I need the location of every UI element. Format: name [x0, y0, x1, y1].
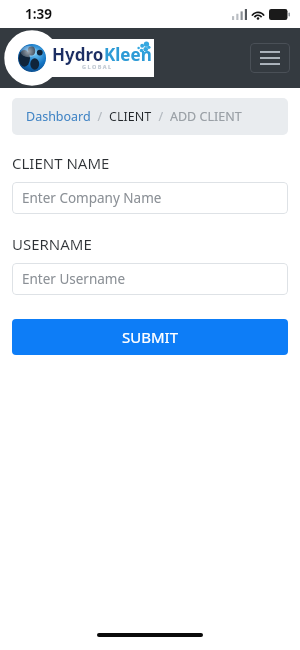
- staticText: ADD CLIENT: [170, 108, 242, 125]
- button[interactable]: Hydro: [12, 39, 154, 77]
- staticText: CLIENT NAME: [12, 153, 110, 173]
- button[interactable]: SUBMIT: [12, 319, 288, 355]
- staticText: Enter Username: [22, 270, 126, 288]
- staticText: Hydro: [52, 43, 104, 66]
- button[interactable]: Open navigation menu: [250, 43, 290, 73]
- staticText: G L O B A L: [82, 63, 112, 70]
- button[interactable]: Dashboard: [26, 108, 91, 125]
- staticText: 1:39: [25, 5, 52, 23]
- staticText: Enter Company Name: [22, 189, 162, 207]
- staticText: USERNAME: [12, 234, 92, 254]
- button[interactable]: Enter Company Name: [12, 182, 288, 214]
- staticText: /: [152, 108, 170, 125]
- staticText: SUBMIT: [122, 327, 178, 347]
- button[interactable]: CLIENT: [109, 108, 152, 125]
- button[interactable]: Enter Username: [12, 263, 288, 295]
- staticText: /: [91, 108, 109, 125]
- staticText: Kleen: [104, 43, 152, 66]
